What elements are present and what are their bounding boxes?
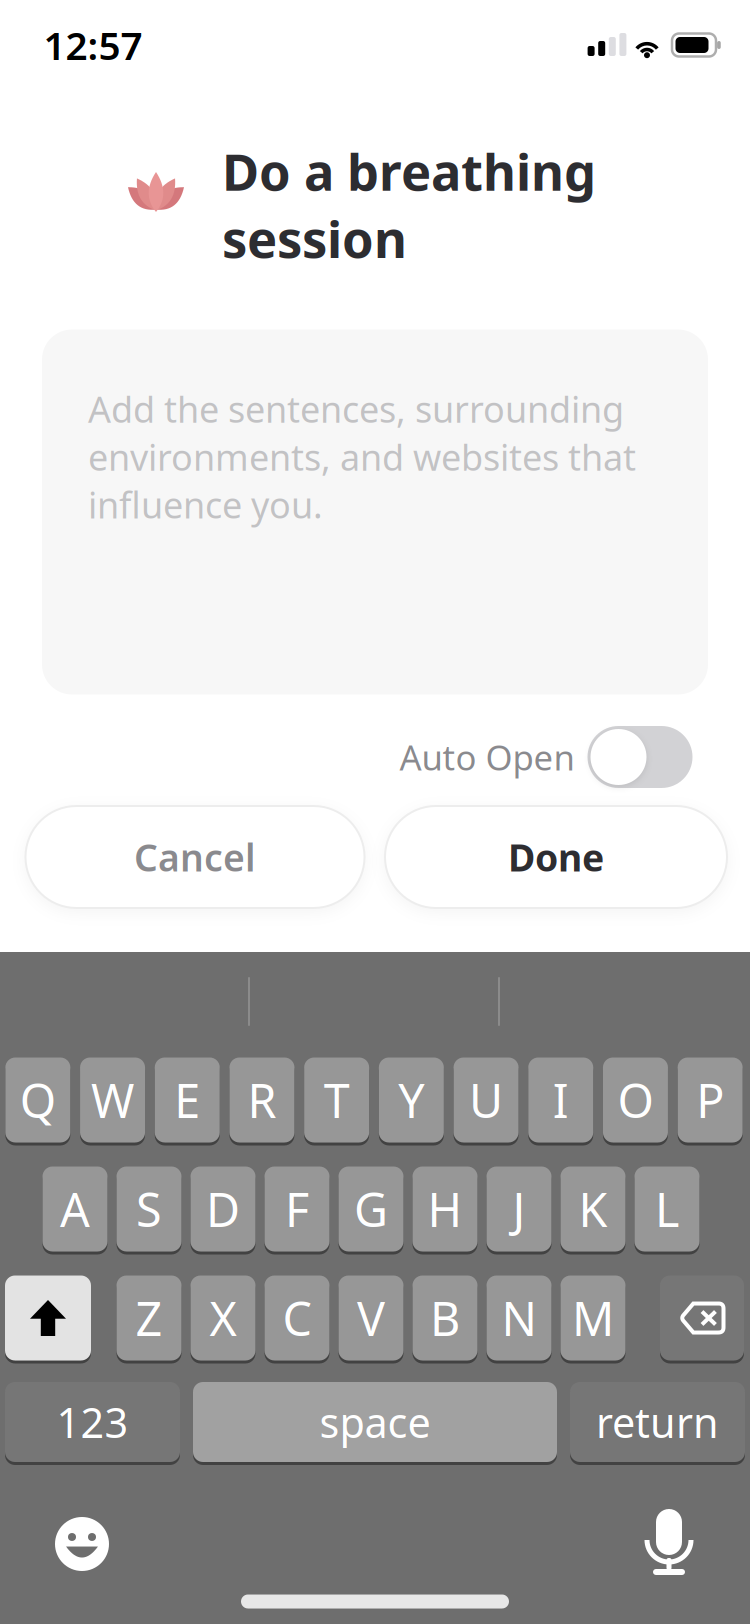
- button[interactable]: B: [412, 1275, 477, 1360]
- button[interactable]: E: [155, 1057, 220, 1142]
- staticText: P: [696, 1069, 724, 1131]
- staticText: return: [596, 1395, 719, 1449]
- staticText: R: [247, 1069, 276, 1131]
- button[interactable]: A: [42, 1166, 107, 1251]
- staticText: 123: [56, 1395, 128, 1449]
- button[interactable]: Y: [379, 1057, 444, 1142]
- button[interactable]: V: [338, 1275, 403, 1360]
- staticText: F: [285, 1178, 309, 1240]
- button[interactable]: W: [80, 1057, 145, 1142]
- staticText: Y: [398, 1069, 424, 1131]
- staticText: Done: [508, 832, 604, 882]
- button[interactable]: H: [412, 1166, 477, 1251]
- staticText: 12:57: [43, 19, 142, 71]
- staticText: Q: [20, 1069, 56, 1131]
- staticText: X: [209, 1287, 236, 1349]
- staticText: M: [572, 1287, 614, 1349]
- button[interactable]: 123: [5, 1382, 180, 1462]
- staticText: I: [553, 1069, 569, 1131]
- staticText: C: [282, 1287, 311, 1349]
- staticText: E: [174, 1069, 200, 1131]
- button[interactable]: O: [603, 1057, 668, 1142]
- button[interactable]: Delete: [660, 1275, 744, 1360]
- staticText: L: [655, 1178, 679, 1240]
- button[interactable]: J: [486, 1166, 551, 1251]
- staticText: N: [501, 1287, 536, 1349]
- staticText: Add the sentences, surrounding environme…: [88, 385, 636, 528]
- button[interactable]: space: [193, 1382, 557, 1462]
- staticText: B: [430, 1287, 460, 1349]
- button[interactable]: Auto Open: [587, 726, 692, 788]
- staticText: J: [512, 1178, 525, 1240]
- button[interactable]: T: [304, 1057, 369, 1142]
- staticText: T: [324, 1069, 350, 1131]
- button[interactable]: Emoji: [55, 1517, 109, 1571]
- button[interactable]: Shift: [5, 1275, 91, 1360]
- button[interactable]: Q: [5, 1057, 70, 1142]
- button[interactable]: K: [560, 1166, 625, 1251]
- staticText: G: [354, 1178, 388, 1240]
- button[interactable]: S: [116, 1166, 181, 1251]
- button[interactable]: Dictation: [641, 1513, 697, 1575]
- staticText: S: [136, 1178, 162, 1240]
- staticText: W: [91, 1069, 134, 1131]
- button[interactable]: L: [634, 1166, 699, 1251]
- button[interactable]: R: [229, 1057, 294, 1142]
- staticText: Auto Open: [399, 734, 574, 780]
- button[interactable]: F: [264, 1166, 329, 1251]
- staticText: H: [427, 1178, 462, 1240]
- staticText: Do a breathing session: [222, 137, 596, 272]
- button[interactable]: P: [678, 1057, 743, 1142]
- staticText: D: [206, 1178, 240, 1240]
- staticText: K: [578, 1178, 607, 1240]
- staticText: Cancel: [134, 832, 256, 882]
- button[interactable]: M: [560, 1275, 625, 1360]
- button[interactable]: Done: [385, 806, 727, 908]
- button[interactable]: U: [454, 1057, 519, 1142]
- staticText: O: [617, 1069, 653, 1131]
- button[interactable]: C: [264, 1275, 329, 1360]
- staticText: U: [469, 1069, 503, 1131]
- staticText: V: [357, 1287, 385, 1349]
- staticText: A: [60, 1178, 90, 1240]
- button[interactable]: N: [486, 1275, 551, 1360]
- button[interactable]: return: [570, 1382, 745, 1462]
- staticText: Z: [135, 1287, 162, 1349]
- button[interactable]: G: [338, 1166, 403, 1251]
- button[interactable]: I: [528, 1057, 593, 1142]
- button[interactable]: Z: [116, 1275, 181, 1360]
- button[interactable]: D: [190, 1166, 255, 1251]
- button[interactable]: Cancel: [25, 806, 364, 908]
- button[interactable]: X: [190, 1275, 255, 1360]
- staticText: space: [319, 1395, 430, 1449]
